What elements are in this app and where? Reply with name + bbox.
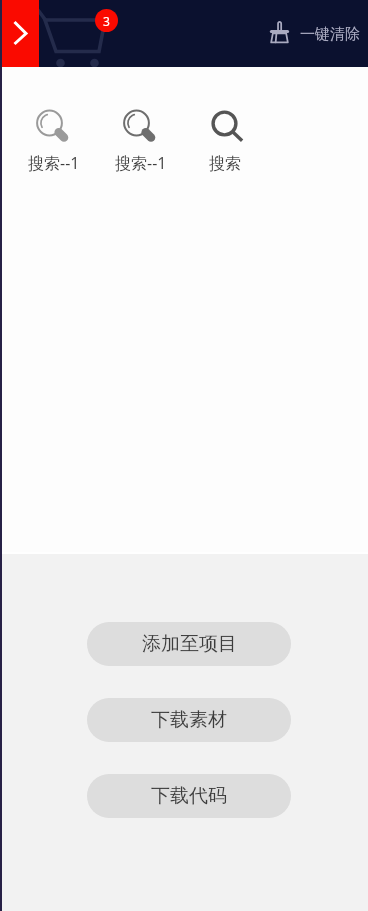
button[interactable]: Back	[0, 0, 39, 67]
staticText: 搜索--1	[28, 152, 80, 174]
button[interactable]: 搜索--1	[26, 105, 82, 174]
button[interactable]: 下载素材	[87, 698, 291, 742]
button[interactable]: 下载代码	[87, 774, 291, 818]
button[interactable]: 搜索	[197, 105, 253, 174]
staticText: 一键清除	[300, 25, 360, 44]
button[interactable]: 搜索--1	[113, 105, 169, 174]
button[interactable]: 添加至项目	[87, 622, 291, 666]
staticText: 下载代码	[151, 784, 227, 808]
staticText: 下载素材	[151, 708, 227, 732]
staticText: 添加至项目	[142, 632, 237, 656]
staticText: 3	[103, 13, 110, 29]
staticText: 搜索--1	[115, 152, 167, 174]
button[interactable]: 一键清除	[267, 21, 360, 46]
staticText: 搜索	[209, 154, 241, 174]
